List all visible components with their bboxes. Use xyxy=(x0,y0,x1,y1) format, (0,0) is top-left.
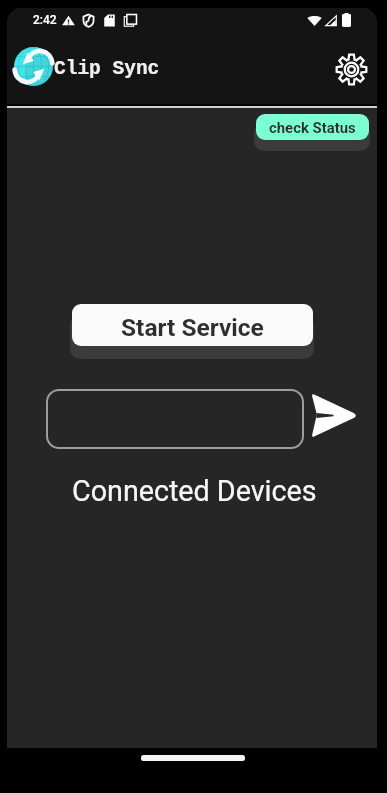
staticText: Connected Devices xyxy=(72,474,317,508)
staticText: check Status xyxy=(269,119,356,136)
button[interactable] xyxy=(46,389,304,449)
staticText: Start Service xyxy=(121,313,264,342)
staticText: 2:42 xyxy=(33,13,57,27)
button[interactable]: Settings xyxy=(331,49,372,90)
button[interactable]: check Status xyxy=(256,114,369,140)
button[interactable]: Start Service xyxy=(72,304,313,346)
staticText: Clip Sync xyxy=(54,58,160,80)
button[interactable]: Send xyxy=(310,392,357,439)
